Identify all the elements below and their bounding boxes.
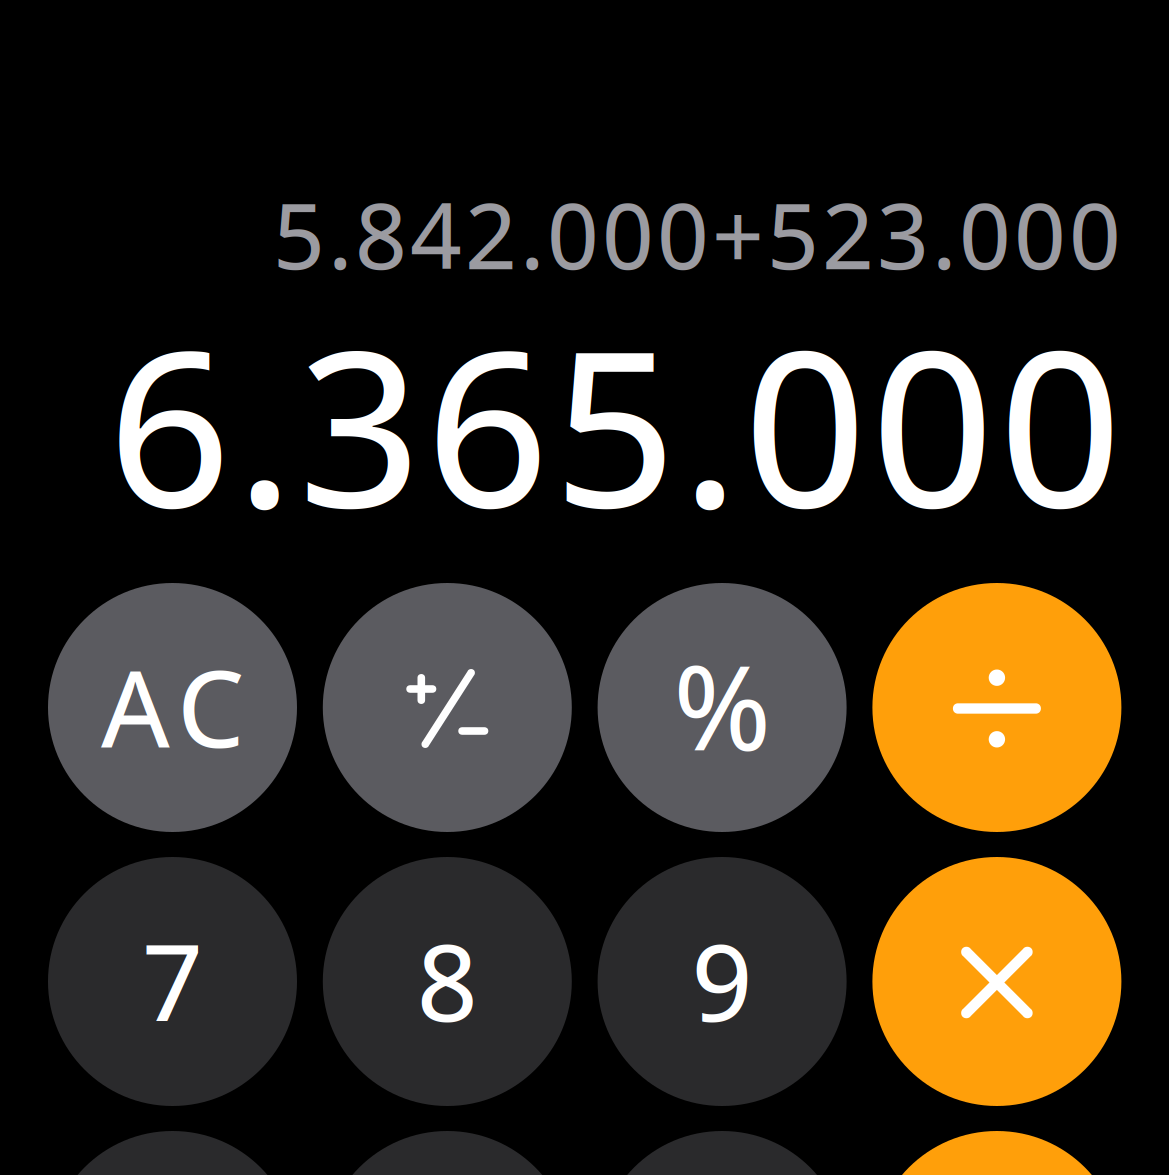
button[interactable]: Multiply — [872, 857, 1121, 1106]
staticText: 8 — [417, 907, 478, 1053]
button[interactable]: Plus minus — [323, 583, 572, 832]
staticText: 9 — [692, 907, 753, 1053]
staticText: 7 — [142, 907, 203, 1053]
button[interactable]: 6 — [598, 1131, 847, 1175]
staticText: 6.365.000 — [108, 278, 1122, 570]
staticText: % — [674, 626, 771, 784]
button[interactable]: 9 — [598, 857, 847, 1106]
button[interactable]: Divide — [872, 583, 1121, 832]
staticText: 5.842.000+523.000 — [273, 172, 1121, 296]
button[interactable]: 7 — [48, 857, 297, 1106]
button[interactable]: 8 — [323, 857, 572, 1106]
button[interactable]: Subtract — [872, 1131, 1121, 1175]
button[interactable]: AC — [48, 583, 297, 832]
button[interactable]: 4 — [48, 1131, 297, 1175]
button[interactable]: 5 — [323, 1131, 572, 1175]
staticText: AC — [101, 633, 245, 779]
button[interactable]: % — [598, 583, 847, 832]
